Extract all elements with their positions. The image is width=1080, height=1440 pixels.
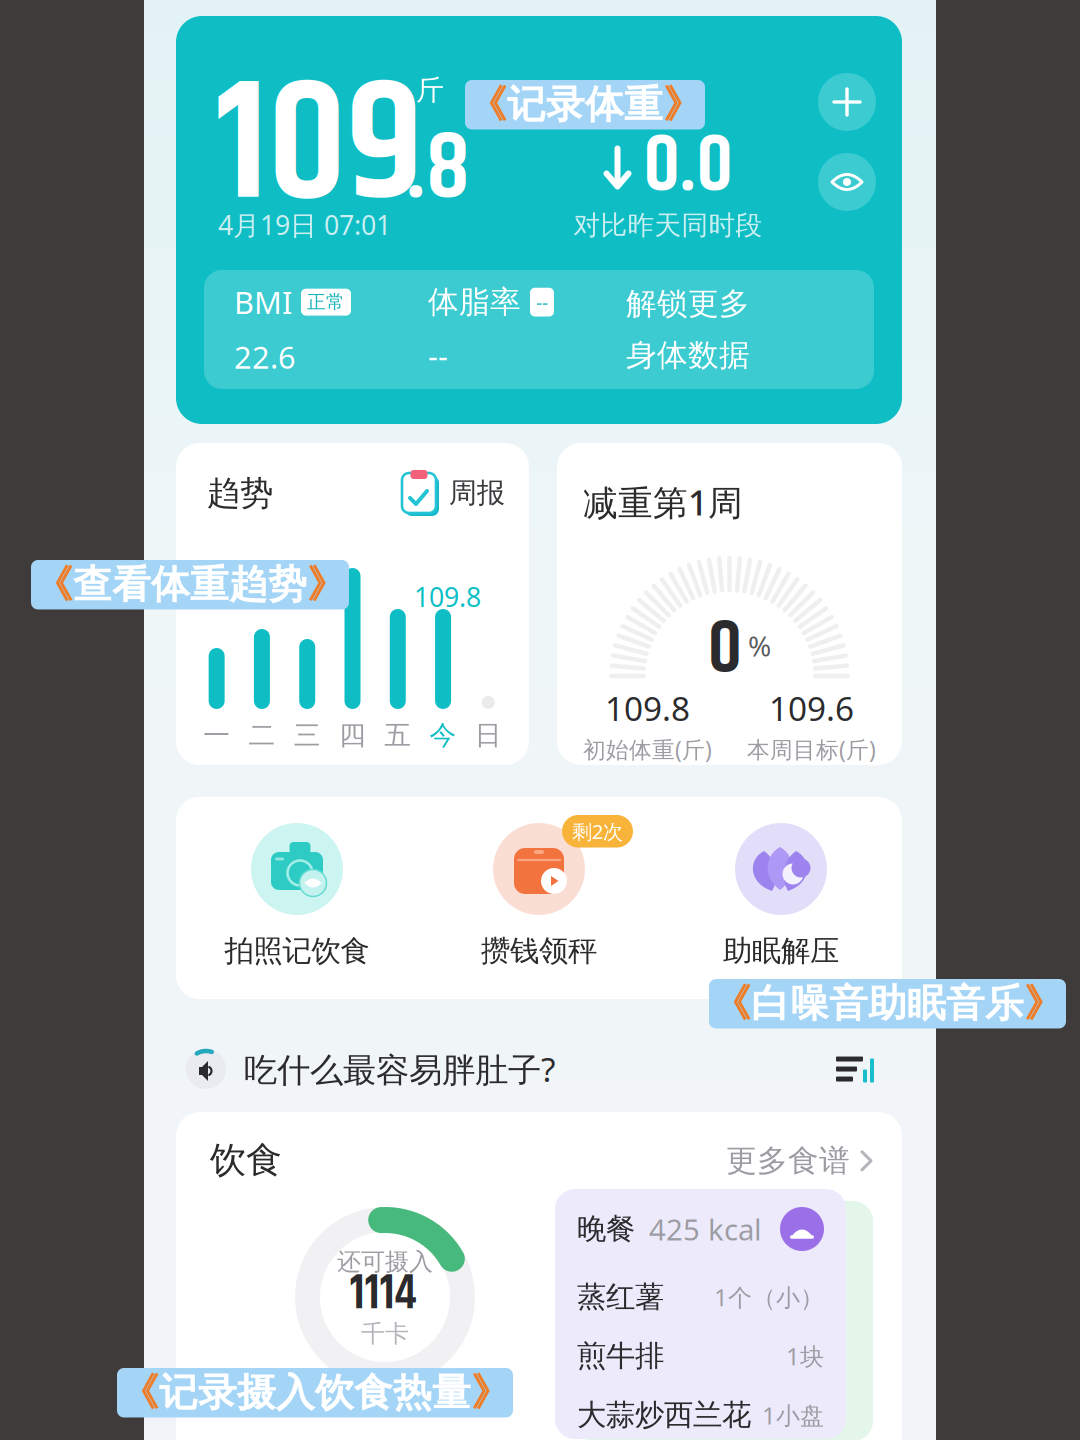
staticText: 三 [294, 719, 321, 752]
staticText: 大蒜炒西兰花 [577, 1397, 751, 1433]
staticText: 109 [216, 19, 423, 278]
staticText: 周报 [449, 476, 505, 510]
staticText: 《 [712, 980, 751, 1027]
staticText: 1114 [350, 1258, 416, 1331]
staticText: 解锁更多 [626, 285, 750, 322]
staticText: 查看体重趋势 [73, 561, 307, 608]
staticText: 记录体重 [507, 81, 663, 128]
staticText: 体脂率 [428, 283, 521, 321]
staticText: 日 [475, 719, 502, 752]
staticText: 吃什么最容易胖肚子? [244, 1047, 555, 1091]
staticText: 减重第1周 [583, 479, 743, 525]
staticText: -- [428, 335, 448, 376]
staticText: 425 kcal [649, 1209, 762, 1248]
staticText: 《 [468, 81, 507, 128]
button[interactable]: 记录体重 [818, 73, 876, 131]
staticText: 22.6 [234, 336, 296, 377]
staticText: 饮食 [210, 1138, 282, 1182]
staticText: % [748, 627, 771, 664]
staticText: 煎牛排 [577, 1338, 664, 1374]
staticText: 0.0 [643, 108, 732, 228]
staticText: 还可摄入 [337, 1247, 433, 1276]
button[interactable]: 助眠解压 [660, 823, 902, 969]
staticText: 》 [663, 81, 702, 128]
staticText: 《 [120, 1369, 159, 1416]
staticText: 拍照记饮食 [224, 933, 369, 969]
staticText: 正常 [307, 291, 345, 314]
staticText: 记录摄入饮食热量 [159, 1369, 471, 1416]
staticText: 助眠解压 [723, 933, 839, 969]
staticText: 白噪音助眠音乐 [751, 980, 1024, 1027]
staticText: 109.6 [769, 686, 854, 730]
staticText: 109.8 [414, 579, 481, 614]
staticText: 初始体重(斤) [583, 734, 712, 764]
button[interactable]: 吃什么最容易胖肚子? [176, 1047, 902, 1091]
staticText: 斤 [416, 73, 444, 107]
staticText: 1块 [786, 1340, 824, 1372]
staticText: 》 [307, 561, 346, 608]
staticText: 1个（小） [714, 1281, 824, 1313]
button[interactable]: 周报 [398, 469, 505, 517]
staticText: BMI [234, 282, 292, 322]
staticText: 对比昨天同时段 [573, 209, 762, 242]
staticText: 本周目标(斤) [747, 734, 876, 764]
staticText: .8 [406, 99, 470, 242]
staticText: 千卡 [361, 1319, 409, 1348]
staticText: 趋势 [207, 473, 273, 514]
staticText: 1小盘 [762, 1399, 824, 1431]
staticText: 攒钱领秤 [481, 933, 597, 969]
staticText: 蒸红薯 [577, 1279, 664, 1315]
staticText: 更多食谱 [726, 1142, 850, 1180]
staticText: 》 [471, 1369, 510, 1416]
staticText: 二 [248, 719, 275, 752]
button[interactable]: 更多食谱 [726, 1142, 874, 1180]
staticText: 109.8 [605, 686, 690, 730]
staticText: 四 [339, 719, 366, 752]
staticText: 五 [384, 719, 411, 752]
button[interactable]: 拍照记饮食 [176, 823, 418, 969]
staticText: 身体数据 [626, 336, 750, 374]
staticText: 《 [34, 561, 73, 608]
staticText: 一 [203, 719, 230, 752]
staticText: 晚餐 [577, 1211, 635, 1247]
button[interactable]: 剩2次 [418, 823, 660, 969]
staticText: 今 [430, 719, 457, 752]
staticText: 0 [708, 595, 742, 707]
staticText: 》 [1024, 980, 1063, 1027]
staticText: 剩2次 [572, 818, 623, 845]
staticText: 4月19日 07:01 [218, 207, 391, 242]
button[interactable]: 显示隐藏数据 [818, 153, 876, 211]
staticText: -- [536, 290, 548, 314]
